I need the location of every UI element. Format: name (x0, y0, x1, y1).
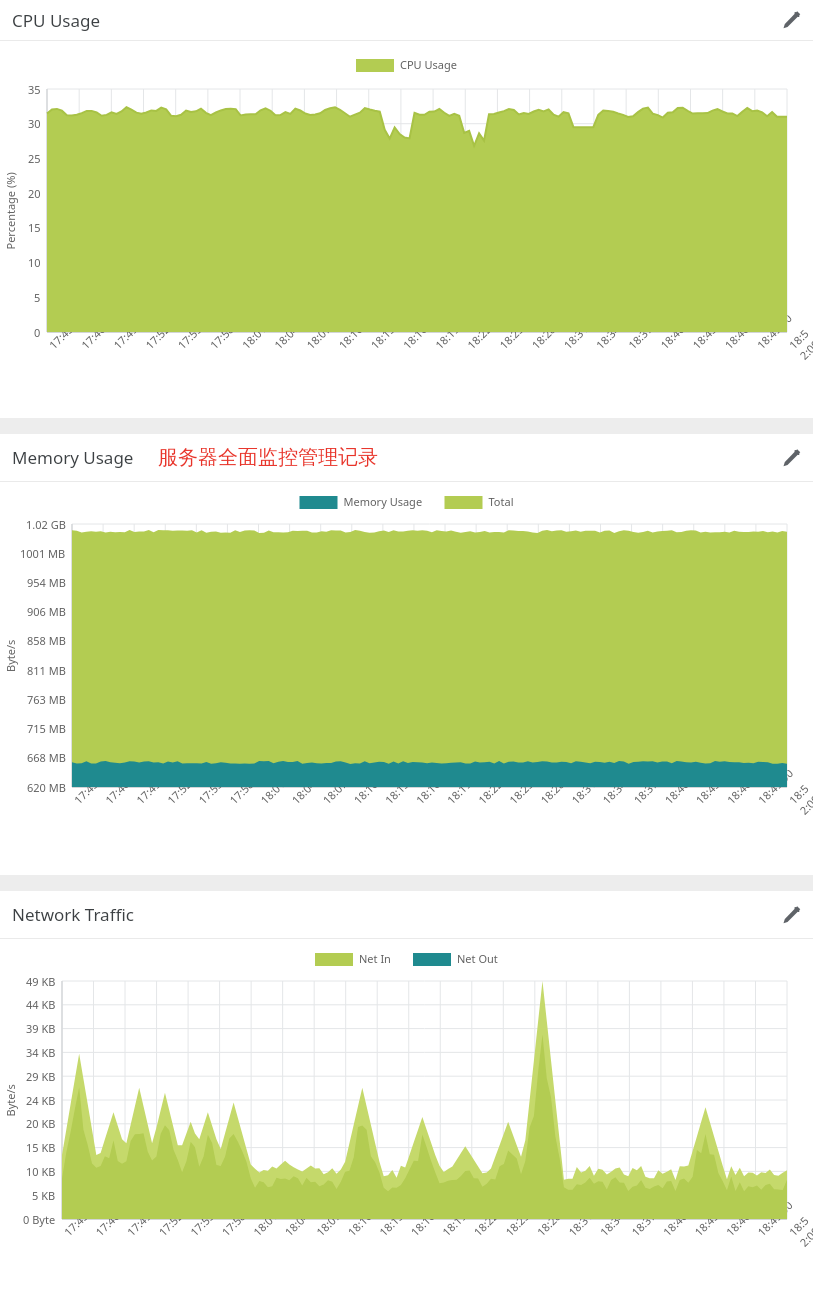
staticText: CPU Usage (12, 9, 101, 32)
staticText: Memory Usage (12, 446, 134, 469)
button[interactable]: Edit (769, 0, 813, 40)
staticText: 服务器全面监控管理记录 (158, 445, 378, 470)
button[interactable]: Edit (769, 893, 813, 937)
button[interactable]: Edit (769, 436, 813, 480)
staticText: Network Traffic (12, 903, 134, 926)
